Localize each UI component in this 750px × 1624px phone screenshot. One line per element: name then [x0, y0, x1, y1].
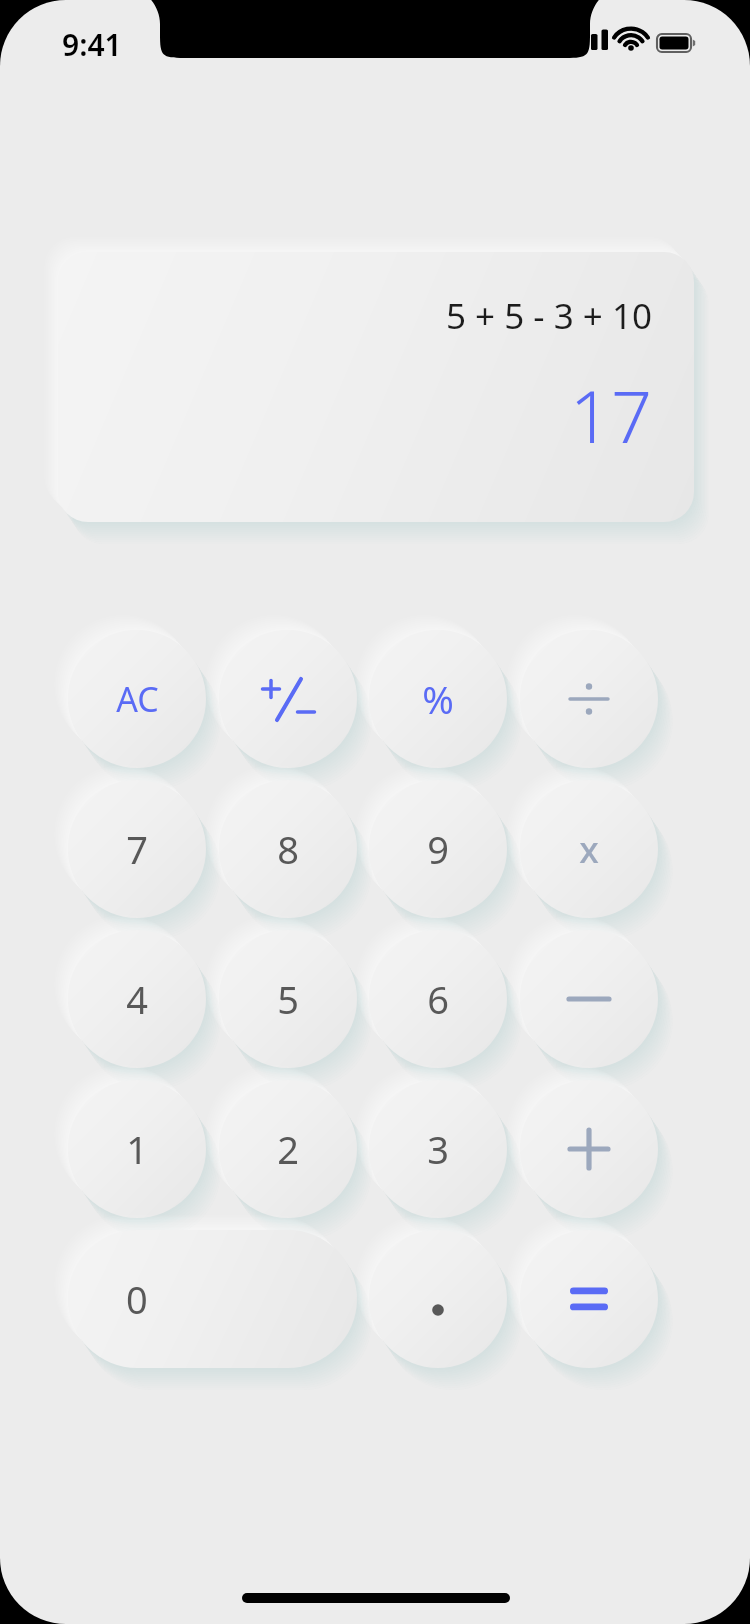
button[interactable]: 1 [68, 1080, 206, 1218]
button[interactable]: 3 [369, 1080, 507, 1218]
staticText: AC [116, 676, 159, 722]
staticText: 5 + 5 - 3 + 10 [445, 292, 652, 340]
staticText: 8 [277, 823, 299, 875]
staticText: 9 [427, 823, 449, 875]
staticText: 3 [427, 1123, 449, 1175]
staticText: 4 [126, 973, 148, 1025]
staticText: 17 [569, 366, 652, 464]
staticText: 5 [277, 973, 299, 1025]
staticText: 7 [126, 823, 148, 875]
button[interactable]: 6 [369, 930, 507, 1068]
staticText: x [579, 825, 599, 874]
button[interactable]: Equals [520, 1230, 658, 1368]
button[interactable]: 5 [219, 930, 357, 1068]
button[interactable]: % [369, 630, 507, 768]
button[interactable]: 5 + 5 - 3 + 10 [58, 252, 694, 522]
button[interactable]: Multiply [520, 780, 658, 918]
button[interactable]: Toggle sign [219, 630, 357, 768]
button[interactable]: 0 [68, 1230, 357, 1368]
button[interactable]: Decimal point [369, 1230, 507, 1368]
button[interactable]: Plus [520, 1080, 658, 1218]
staticText: % [422, 673, 454, 725]
button[interactable]: 8 [219, 780, 357, 918]
staticText: 1 [126, 1123, 148, 1175]
button[interactable]: 9 [369, 780, 507, 918]
staticText: 2 [277, 1123, 299, 1175]
staticText: 9:41 [62, 24, 122, 65]
staticText: 0 [126, 1273, 148, 1325]
button[interactable]: Divide [520, 630, 658, 768]
button[interactable]: 4 [68, 930, 206, 1068]
staticText: 6 [427, 973, 449, 1025]
button[interactable]: AC [68, 630, 206, 768]
button[interactable]: 7 [68, 780, 206, 918]
button[interactable]: 2 [219, 1080, 357, 1218]
button[interactable]: Minus [520, 930, 658, 1068]
